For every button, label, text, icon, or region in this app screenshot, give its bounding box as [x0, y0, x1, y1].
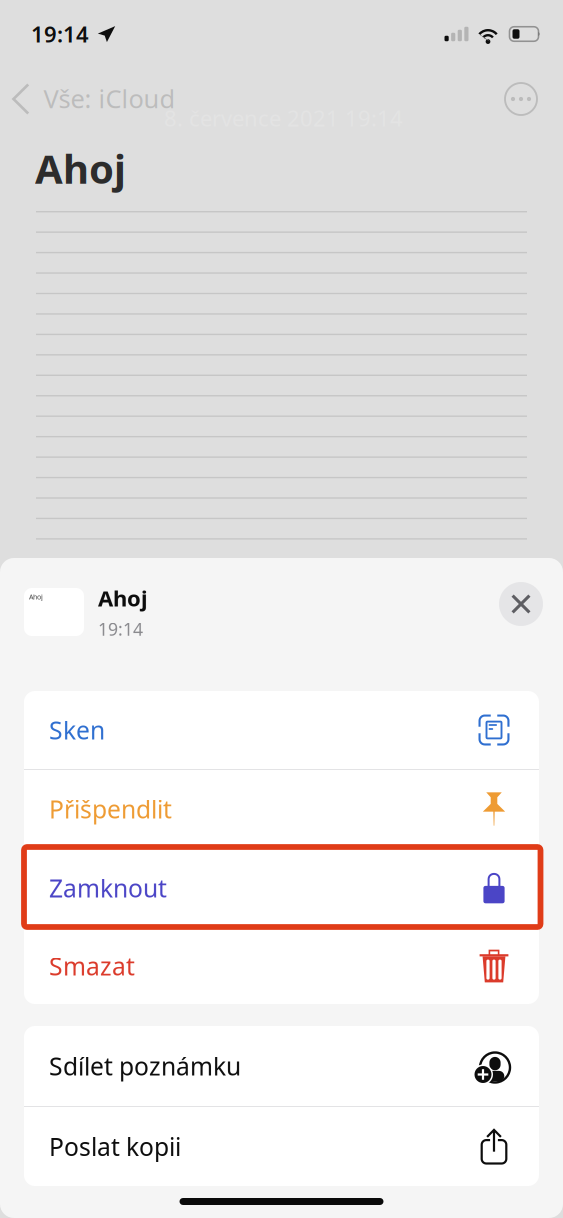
button[interactable]: Vše: iCloud	[0, 68, 563, 125]
staticText: Poslat kopii	[49, 1130, 181, 1163]
staticText: Sdílet poznámku	[49, 1049, 241, 1083]
staticText: Smazat	[49, 949, 135, 983]
button[interactable]: More	[505, 83, 537, 115]
staticText: Vše: iCloud	[43, 81, 175, 116]
button[interactable]: Smazat	[24, 928, 539, 1004]
staticText: Ahoj	[29, 592, 43, 601]
staticText: Přišpendlit	[49, 792, 172, 826]
button[interactable]: Close	[499, 582, 543, 626]
staticText: Ahoj	[35, 141, 126, 195]
button[interactable]: Přišpendlit	[24, 770, 539, 848]
staticText: Sken	[49, 713, 105, 747]
staticText: 19:14	[31, 19, 89, 49]
button[interactable]: Sken	[24, 691, 539, 769]
staticText: Ahoj	[98, 583, 148, 613]
button[interactable]: Zamknout	[24, 849, 539, 927]
staticText: Zamknout	[49, 871, 167, 905]
button[interactable]: Sdílet poznámku	[24, 1026, 539, 1106]
staticText: 19:14	[98, 617, 143, 641]
button[interactable]: Poslat kopii	[24, 1107, 539, 1186]
